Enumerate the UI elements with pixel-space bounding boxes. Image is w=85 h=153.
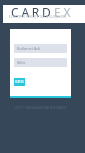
staticText: Kullanici Adi xyxy=(17,46,40,51)
staticText: Sifre xyxy=(17,60,26,65)
staticText: 2017 © TUM HAKLARI SAKLIDIR CARDEX xyxy=(0,106,83,110)
staticText: GIRIS xyxy=(15,80,24,84)
staticText: CARD xyxy=(11,4,54,20)
button[interactable]: Sifre xyxy=(14,58,67,67)
staticText: ELEKTRIK ENERJI TEKNOLOJILERI xyxy=(0,15,79,19)
button[interactable]: GIRIS xyxy=(14,78,25,86)
button[interactable]: Kullanici Adi xyxy=(14,44,67,53)
staticText: EX xyxy=(54,4,74,20)
